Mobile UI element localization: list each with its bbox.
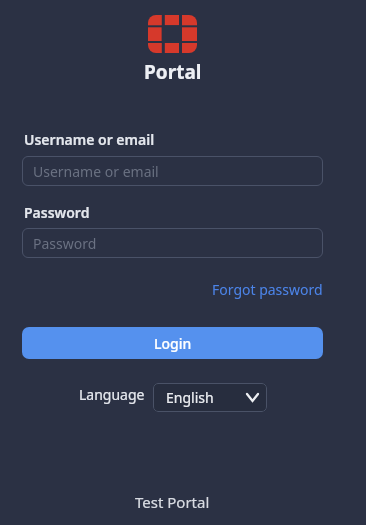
button[interactable]: Password: [22, 228, 323, 258]
staticText: Login: [154, 334, 192, 353]
staticText: Language: [79, 385, 145, 404]
button[interactable]: Forgot password: [212, 280, 323, 299]
staticText: Username or email: [24, 130, 155, 149]
button[interactable]: English: [153, 383, 267, 412]
staticText: Password: [24, 203, 90, 222]
button[interactable]: Login: [22, 327, 323, 359]
staticText: Portal: [144, 59, 202, 85]
staticText: Password: [33, 234, 97, 253]
button[interactable]: Username or email: [22, 156, 323, 186]
staticText: Username or email: [33, 162, 159, 181]
staticText: Test Portal: [135, 492, 210, 512]
staticText: English: [166, 388, 214, 407]
